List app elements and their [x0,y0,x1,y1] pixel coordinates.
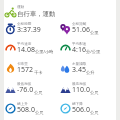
staticText: 公尺 [35,110,44,115]
staticText: 51.06 [72,25,90,35]
staticText: 110.0 [72,85,90,95]
staticText: 最高海拔 [72,82,87,87]
button[interactable]: Total ascent [5,100,60,116]
button[interactable]: Average speed [5,40,60,56]
button[interactable]: Hydration [60,60,115,76]
staticText: -76.0 [17,85,34,95]
staticText: 運動 [17,5,25,10]
staticText: 全程距離 [72,22,87,27]
staticText: 1572 [17,65,34,75]
button[interactable]: Calories [5,60,60,76]
staticText: 3.45 [72,65,86,75]
staticText: 公升 [86,70,95,75]
button[interactable]: 運動 [5,4,85,18]
staticText: 4:16 [72,45,86,55]
staticText: 總上升 [17,102,28,107]
staticText: 公尺 [90,90,99,95]
button[interactable]: Average pace [60,40,115,56]
staticText: 平均配速 [72,42,87,47]
staticText: 508.0 [17,105,35,115]
staticText: 公里/小時 [35,49,54,55]
staticText: 506.0 [72,105,90,115]
staticText: 最低海拔 [17,82,32,87]
staticText: 卡路里 [17,62,28,67]
staticText: 公尺 [34,90,43,95]
button[interactable]: Distance [60,20,115,36]
button[interactable]: Total time [5,20,60,36]
button[interactable]: Total descent [60,100,115,116]
staticText: 平均速度 [17,42,32,47]
staticText: 水量攝取 [72,62,87,67]
staticText: 公尺 [90,110,99,115]
staticText: 14.08 [17,45,35,55]
button[interactable]: Max elevation [60,80,115,96]
staticText: 總下降 [72,102,83,107]
staticText: 千卡 [34,70,43,75]
button[interactable]: Min elevation [5,80,60,96]
staticText: 自行車，運動 [17,10,56,18]
staticText: 分/公里 [86,49,101,55]
staticText: 3:37.39 [17,25,41,35]
staticText: 公里 [90,30,99,35]
staticText: 全程時間 [17,22,32,27]
